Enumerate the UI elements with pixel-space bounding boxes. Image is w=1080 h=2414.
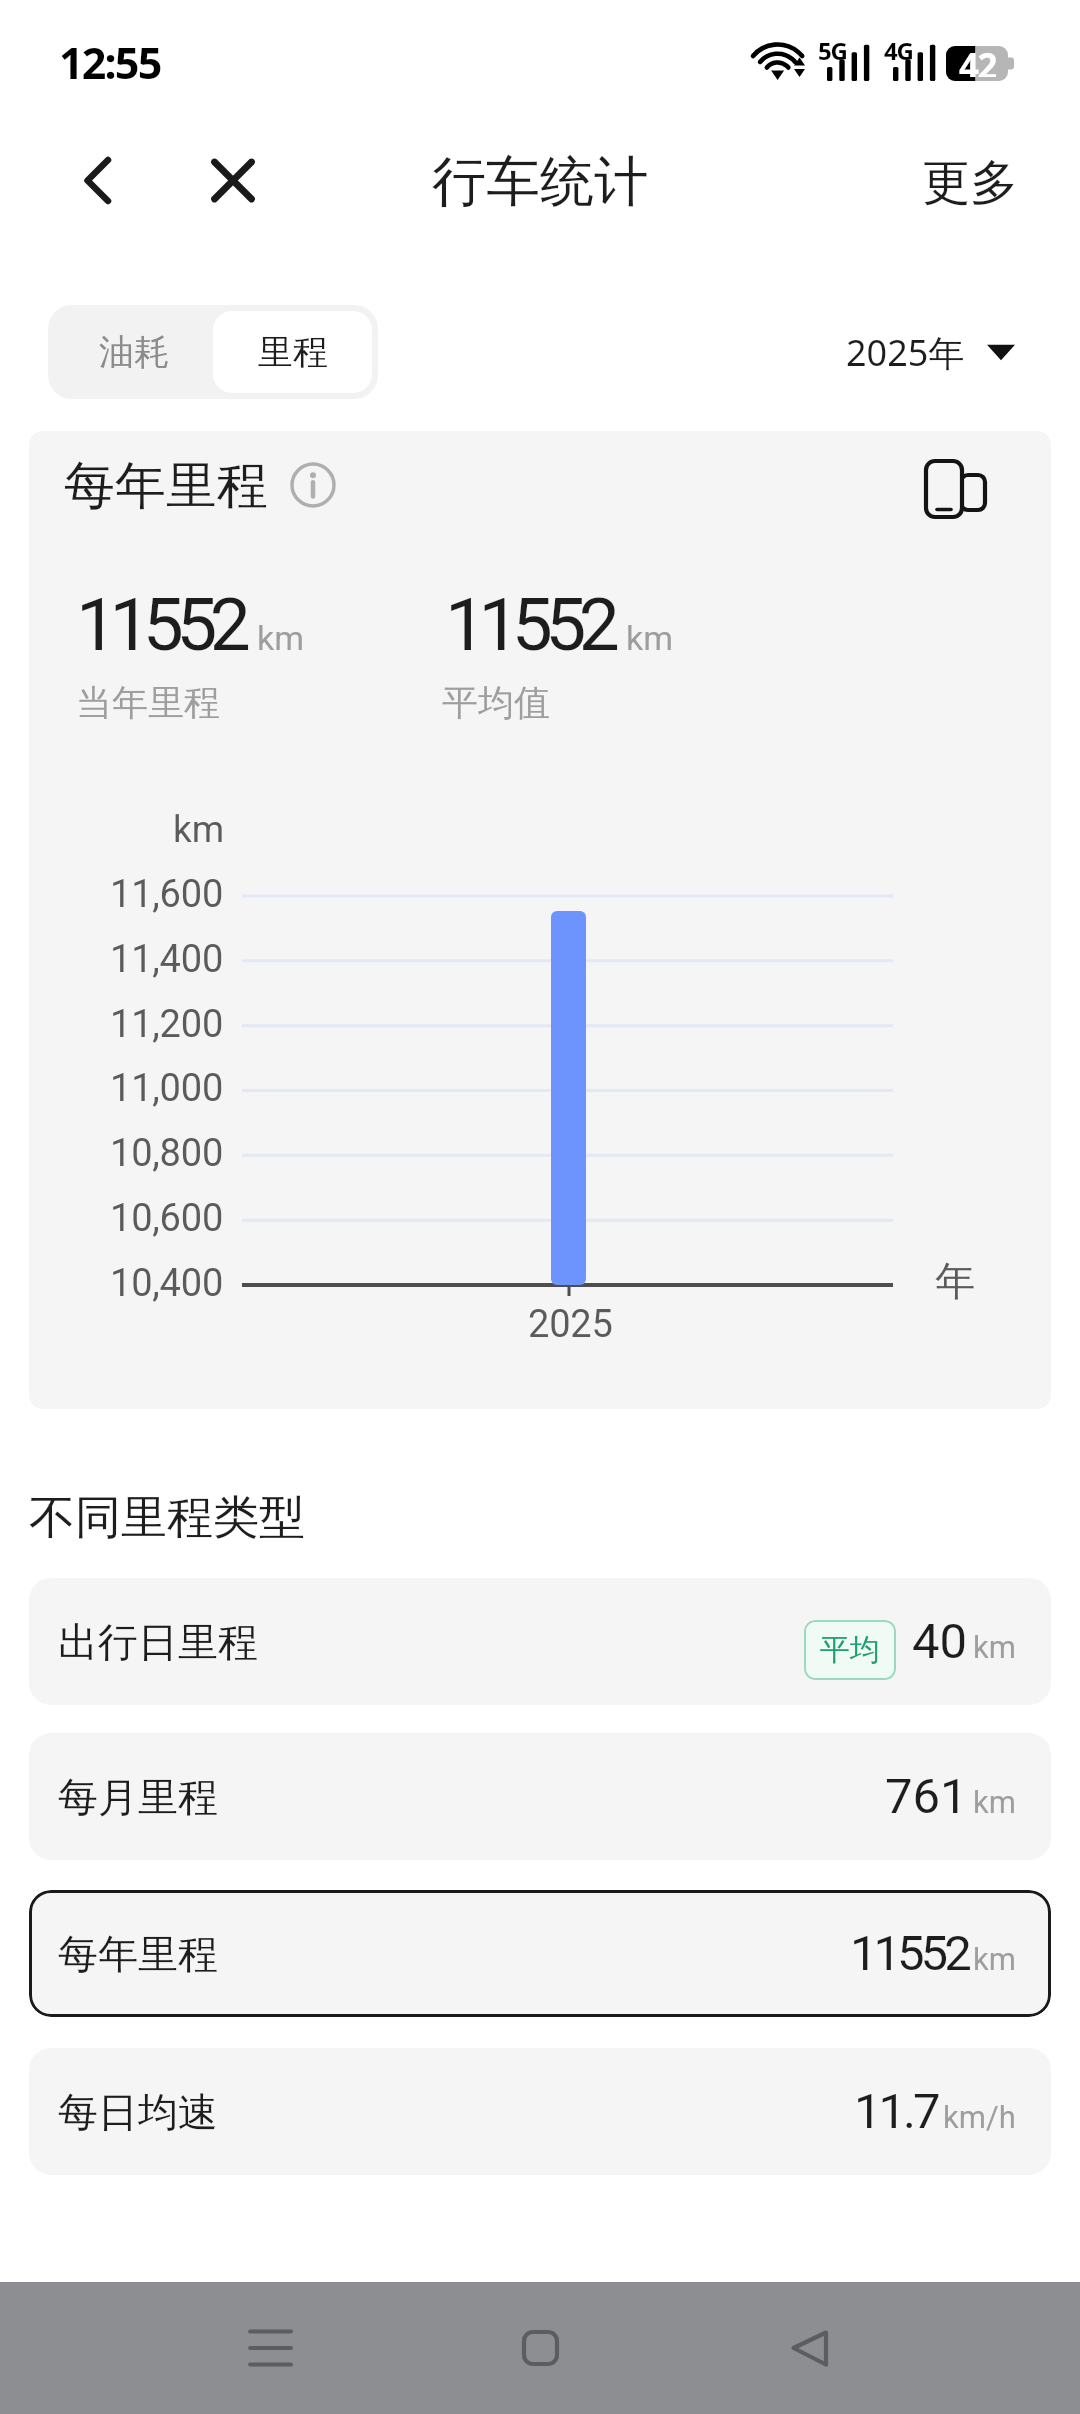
staticText: 10,600 bbox=[110, 1196, 224, 1241]
button[interactable]: 2025年 bbox=[838, 308, 1023, 396]
staticText: 不同里程类型 bbox=[29, 1489, 305, 1547]
button[interactable]: 油耗 bbox=[54, 311, 213, 393]
button[interactable]: 每年里程 bbox=[29, 1890, 1051, 2017]
staticText: 每月里程 bbox=[58, 1772, 218, 1822]
staticText: 11.7 bbox=[854, 2083, 938, 2140]
staticText: 11552 bbox=[445, 582, 613, 668]
staticText: 油耗 bbox=[99, 330, 169, 374]
button[interactable]: 每日均速 bbox=[29, 2048, 1051, 2175]
staticText: 里程 bbox=[258, 330, 328, 374]
staticText: 平均值 bbox=[442, 680, 550, 725]
staticText: 更多 bbox=[922, 153, 1018, 213]
staticText: 11,000 bbox=[110, 1066, 224, 1111]
staticText: km bbox=[626, 618, 674, 658]
staticText: 11,400 bbox=[110, 937, 224, 982]
staticText: km bbox=[173, 808, 225, 851]
staticText: 761 bbox=[885, 1768, 968, 1825]
button[interactable]: Back bbox=[740, 2298, 880, 2398]
staticText: 10,400 bbox=[110, 1261, 224, 1306]
staticText: 每年里程 bbox=[58, 1929, 218, 1979]
button[interactable]: 里程 bbox=[213, 311, 372, 393]
staticText: 出行日里程 bbox=[58, 1617, 258, 1667]
staticText: 平均 bbox=[820, 1631, 880, 1669]
staticText: 11552 bbox=[850, 1925, 968, 1982]
button[interactable]: Home bbox=[470, 2298, 610, 2398]
button[interactable]: Info bbox=[269, 441, 357, 529]
button[interactable]: 出行日里程 bbox=[29, 1578, 1051, 1705]
staticText: km bbox=[973, 1784, 1016, 1820]
button[interactable]: 每月里程 bbox=[29, 1733, 1051, 1860]
button[interactable]: Rotate screen bbox=[901, 435, 1011, 545]
staticText: 5G bbox=[818, 34, 847, 67]
staticText: 当年里程 bbox=[76, 680, 220, 725]
button[interactable]: Back bbox=[44, 126, 152, 234]
staticText: 4G bbox=[884, 34, 913, 67]
staticText: 年 bbox=[935, 1256, 975, 1306]
staticText: 每年里程 bbox=[64, 454, 268, 518]
staticText: 2025 bbox=[528, 1302, 613, 1347]
staticText: km bbox=[973, 1629, 1016, 1665]
staticText: 2025年 bbox=[846, 328, 965, 377]
staticText: km bbox=[257, 618, 305, 658]
staticText: km bbox=[973, 1941, 1016, 1977]
staticText: km/h bbox=[943, 2099, 1016, 2135]
staticText: 11552 bbox=[76, 582, 244, 668]
button[interactable]: Close bbox=[179, 126, 287, 234]
staticText: 10,800 bbox=[110, 1131, 224, 1176]
button[interactable]: Recents bbox=[200, 2298, 340, 2398]
staticText: 42 bbox=[959, 42, 996, 77]
staticText: 40 bbox=[912, 1613, 968, 1670]
button[interactable]: 更多 bbox=[896, 133, 1044, 233]
staticText: 12:55 bbox=[59, 33, 161, 92]
staticText: 11,200 bbox=[110, 1002, 224, 1047]
staticText: 行车统计 bbox=[432, 148, 648, 216]
staticText: 每日均速 bbox=[58, 2087, 218, 2137]
staticText: 11,600 bbox=[110, 872, 224, 917]
